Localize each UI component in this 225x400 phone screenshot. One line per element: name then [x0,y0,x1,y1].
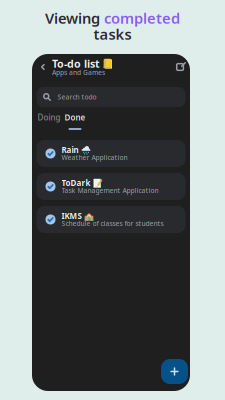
button[interactable]: Done [64,114,85,130]
button[interactable]: IKMS [36,206,185,233]
staticText: To-do list [52,56,100,71]
staticText: Weather Application [61,153,127,162]
staticText: Schedule of classes for students [61,219,163,228]
staticText: Viewing [45,8,104,28]
staticText: 🌧️ [80,145,90,154]
button[interactable]: Doing [37,114,60,130]
staticText: Rain [61,145,78,155]
staticText: Apps and Games [52,68,105,77]
staticText: Done [64,112,85,123]
button[interactable]: ToDark [36,173,185,200]
button[interactable]: Back [37,60,49,74]
button[interactable]: Rain [36,140,185,167]
staticText: 📒 [102,58,114,69]
button[interactable]: Add task [161,359,188,384]
staticText: 📝 [92,178,102,187]
staticText: IKMS [61,211,81,221]
staticText: Task Management Application [61,186,158,195]
staticText: Doing [37,112,60,123]
staticText: ToDark [61,178,90,188]
staticText: 🏫 [83,211,93,220]
button[interactable]: Search todo [36,87,185,107]
staticText: completed [104,8,180,28]
staticText: Search todo [57,93,96,101]
staticText: tasks [93,24,131,44]
button[interactable]: Edit [174,60,188,74]
